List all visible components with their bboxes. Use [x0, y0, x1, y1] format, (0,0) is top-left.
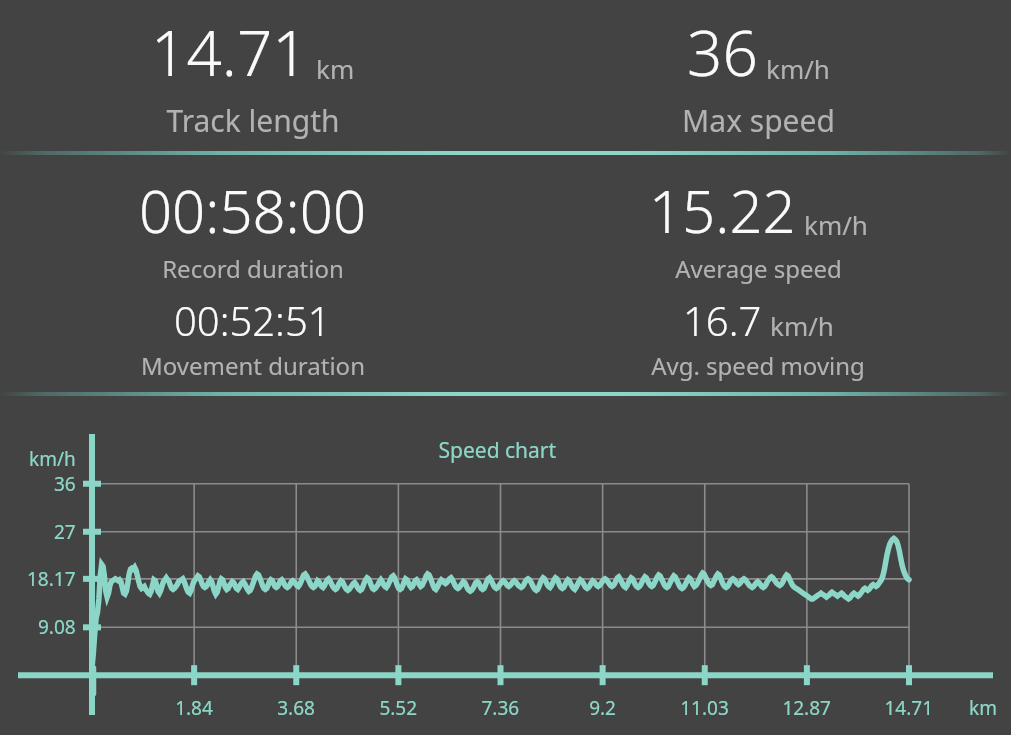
staticText: Avg. speed moving [651, 349, 865, 382]
button[interactable] [0, 396, 1011, 735]
button[interactable]: 15.22 [505, 155, 1011, 392]
staticText: Max speed [682, 100, 835, 141]
button[interactable]: 14.71 [0, 0, 505, 151]
staticText: Record duration [162, 252, 344, 285]
staticText: Average speed [675, 252, 842, 285]
staticText: 15.22 [649, 171, 796, 250]
staticText: 00:52:51 [174, 293, 331, 347]
staticText: km/h [770, 308, 834, 343]
staticText: km/h [804, 207, 868, 242]
staticText: 14.71 [151, 10, 308, 94]
staticText: 00:58:00 [139, 171, 367, 250]
staticText: km [316, 51, 355, 86]
staticText: km/h [766, 51, 830, 86]
staticText: Movement duration [141, 349, 365, 382]
staticText: 36 [687, 10, 758, 94]
staticText: Track length [166, 100, 340, 141]
button[interactable]: 36 [505, 0, 1011, 151]
staticText: 16.7 [683, 293, 762, 347]
button[interactable]: 00:58:00 [0, 155, 505, 392]
